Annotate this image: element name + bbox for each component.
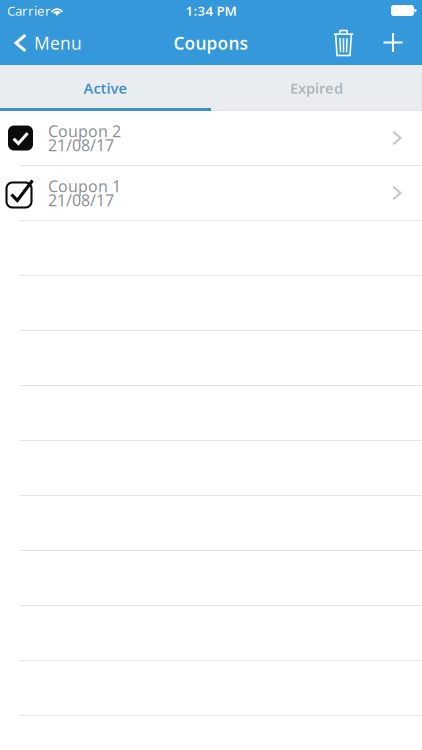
button[interactable]: Coupon 1 [0,166,422,221]
staticText: Menu [34,31,82,54]
button[interactable]: Delete [319,21,373,65]
staticText: 21/08/17 [48,189,114,211]
button[interactable]: Coupon 2 [0,111,422,166]
staticText: Coupon 1 [48,175,121,197]
button[interactable]: Add [373,21,422,65]
staticText: 21/08/17 [48,134,114,156]
button[interactable]: Menu [0,21,92,65]
staticText: Coupons [173,31,248,54]
button[interactable]: Active [0,65,211,111]
staticText: Carrier [7,2,51,19]
staticText: Coupon 2 [48,120,121,142]
staticText: Active [83,78,127,98]
staticText: Expired [290,78,343,98]
staticText: 1:34 PM [185,2,236,19]
button[interactable]: Expired [211,65,422,111]
